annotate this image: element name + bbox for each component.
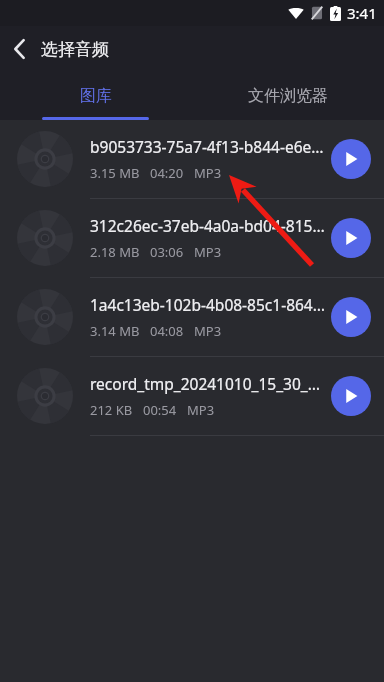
button[interactable]: record_tmp_20241010_15_30_21 (0, 357, 384, 435)
staticText: MP3 (187, 401, 215, 419)
staticText: record_tmp_20241010_15_30_21 (90, 373, 325, 394)
staticText: 3.14 MB (90, 322, 140, 340)
button[interactable]: Back (0, 29, 39, 69)
staticText: 3.15 MB (90, 164, 140, 182)
staticText: 03:06 (150, 243, 184, 261)
staticText: 2.18 MB (90, 243, 140, 261)
staticText: 04:20 (150, 164, 184, 182)
staticText: MP3 (194, 322, 222, 340)
staticText: 文件浏览器 (248, 86, 328, 106)
button[interactable]: 图库 (0, 72, 192, 120)
button[interactable]: Play (331, 139, 371, 179)
button[interactable]: 312c26ec-37eb-4a0a-bd04-815… (0, 199, 384, 277)
staticText: 选择音频 (41, 39, 109, 60)
staticText: MP3 (194, 164, 222, 182)
staticText: 图库 (80, 86, 112, 106)
button[interactable]: Play (331, 376, 371, 416)
button[interactable]: Play (331, 297, 371, 337)
staticText: 04:08 (150, 322, 184, 340)
button[interactable]: Play (331, 218, 371, 258)
staticText: MP3 (194, 243, 222, 261)
staticText: 312c26ec-37eb-4a0a-bd04-815… (90, 215, 325, 236)
button[interactable]: b9053733-75a7-4f13-b844-e6ee… (0, 120, 384, 198)
staticText: b9053733-75a7-4f13-b844-e6ee… (90, 136, 325, 157)
staticText: 00:54 (143, 401, 177, 419)
staticText: 1a4c13eb-102b-4b08-85c1-864… (90, 294, 325, 315)
staticText: 3:41 (347, 3, 377, 23)
button[interactable]: 1a4c13eb-102b-4b08-85c1-864… (0, 278, 384, 356)
button[interactable]: 文件浏览器 (192, 72, 384, 120)
staticText: 212 KB (90, 401, 133, 419)
